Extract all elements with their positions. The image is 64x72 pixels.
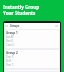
staticText: Group 1 [6, 31, 18, 35]
staticText: Ava M. [6, 35, 15, 39]
button[interactable]: Group 1 [5, 30, 59, 48]
button[interactable]: Group 2 [5, 50, 59, 68]
staticText: Eli R. [6, 59, 12, 63]
staticText: Your Students [3, 10, 36, 16]
staticText: Finn T. [6, 63, 14, 67]
staticText: Instantly Group [3, 4, 40, 10]
staticText: Cara S. [6, 43, 15, 47]
staticText: Group 2 [6, 51, 18, 55]
staticText: Dan P. [6, 55, 14, 59]
staticText: Ben K. [6, 39, 14, 43]
button[interactable]: Add group [55, 25, 58, 27]
button[interactable]: Menu [5, 25, 8, 27]
staticText: Groups [10, 24, 20, 28]
